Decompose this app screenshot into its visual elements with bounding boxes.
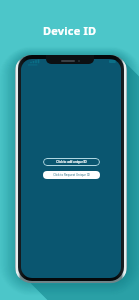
button[interactable]: Click to add unique ID bbox=[43, 158, 100, 166]
button[interactable]: Click to Request Unique ID bbox=[43, 171, 100, 179]
staticText: Click to add unique ID bbox=[56, 160, 87, 164]
staticText: Device ID bbox=[43, 23, 97, 38]
staticText: Click to Request Unique ID bbox=[53, 173, 90, 177]
